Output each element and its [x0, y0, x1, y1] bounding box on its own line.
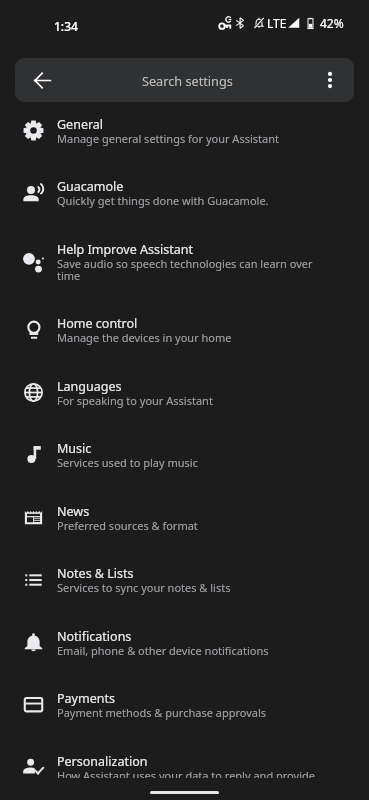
staticText: Manage general settings for your Assista…	[57, 131, 279, 146]
staticText: For speaking to your Assistant	[57, 393, 213, 408]
button[interactable]: Help Improve Assistant	[0, 231, 369, 305]
button[interactable]: Notes & Lists	[0, 555, 369, 618]
staticText: Search settings	[142, 72, 233, 89]
button[interactable]: Personalization	[0, 743, 369, 800]
staticText: How Assistant uses your data to reply an…	[57, 768, 315, 778]
staticText: Help Improve Assistant	[57, 241, 193, 258]
staticText: Notifications	[57, 628, 132, 645]
staticText: Personalization	[57, 753, 148, 770]
staticText: Music	[57, 440, 92, 457]
staticText: Manage the devices in your home	[57, 330, 232, 345]
staticText: Languages	[57, 378, 122, 395]
staticText: General	[57, 116, 104, 133]
staticText: Payment methods & purchase approvals	[57, 705, 267, 720]
staticText: Save audio so speech technologies can le…	[57, 256, 320, 283]
staticText: 1:34	[54, 18, 78, 34]
staticText: Payments	[57, 690, 115, 707]
staticText: Guacamole	[57, 178, 124, 195]
staticText: Email, phone & other device notification…	[57, 643, 269, 658]
button[interactable]: Notifications	[0, 618, 369, 680]
staticText: Services used to play music	[57, 455, 198, 470]
button[interactable]: Music	[0, 430, 369, 493]
button[interactable]: Languages	[0, 368, 369, 430]
button[interactable]: General	[0, 106, 369, 168]
button[interactable]: Guacamole	[0, 168, 369, 231]
staticText: Quickly get things done with Guacamole.	[57, 193, 269, 208]
button[interactable]: Home control	[0, 305, 369, 368]
staticText: News	[57, 503, 90, 520]
staticText: Preferred sources & format	[57, 518, 198, 533]
button[interactable]: Payments	[0, 680, 369, 743]
staticText: Notes & Lists	[57, 565, 134, 582]
button[interactable]: Back	[21, 61, 59, 99]
staticText: 42%	[320, 15, 344, 31]
button[interactable]: More options	[310, 61, 348, 99]
staticText: Home control	[57, 315, 138, 332]
staticText: Services to sync your notes & lists	[57, 580, 231, 595]
button[interactable]: News	[0, 493, 369, 555]
staticText: LTE	[267, 15, 287, 31]
